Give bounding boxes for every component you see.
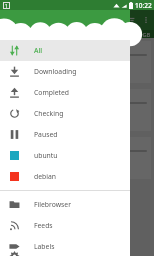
staticText: Down: 7 B/s	[7, 65, 35, 72]
other: Paused	[9, 129, 20, 140]
staticText: Torrent name	[7, 93, 43, 100]
button[interactable]: Feeds	[0, 215, 130, 236]
button[interactable]: Paused	[0, 124, 130, 145]
other: Feeds	[9, 220, 20, 231]
staticText: All	[34, 46, 43, 55]
other: Filebrowser	[9, 199, 20, 210]
staticText: Uploaded: 0 B	[7, 72, 40, 79]
staticText: Pieces: 29/250	[7, 154, 41, 161]
other: All	[9, 45, 20, 56]
button[interactable]: Downloading	[0, 61, 130, 82]
staticText: Uploaded: 0 B	[7, 168, 40, 175]
staticText: Labels	[34, 242, 55, 251]
staticText: 10:22	[135, 1, 152, 10]
other: Labels	[9, 241, 20, 252]
button[interactable]: All	[0, 40, 130, 61]
other: Completed	[9, 87, 20, 98]
button[interactable]: Label colour	[0, 166, 130, 187]
staticText: Completed	[34, 88, 69, 97]
button[interactable]: Filebrowser	[0, 194, 130, 215]
staticText: Paused	[34, 130, 58, 139]
button[interactable]: Label colour	[0, 145, 130, 166]
staticText: Torrent name	[7, 45, 43, 52]
staticText: Filebrowser	[34, 200, 71, 209]
button[interactable]: Labels	[0, 236, 130, 256]
staticText: Checking	[34, 109, 64, 118]
button[interactable]: Checking	[0, 103, 130, 124]
staticText: Pieces: 6/13	[7, 58, 35, 65]
other: Downloading	[9, 66, 20, 77]
staticText: 193.4 GB	[127, 31, 151, 38]
staticText: Pieces: 60/250	[7, 106, 41, 113]
button[interactable]: Completed	[0, 82, 130, 103]
other: Checking	[9, 108, 20, 119]
staticText: ubuntu	[34, 151, 58, 160]
staticText: debian	[34, 172, 56, 181]
staticText: Downloading	[34, 67, 77, 76]
staticText: Down: 0.7 kB/s	[7, 113, 42, 120]
staticText: Feeds	[34, 221, 53, 230]
staticText: 1	[5, 3, 8, 9]
